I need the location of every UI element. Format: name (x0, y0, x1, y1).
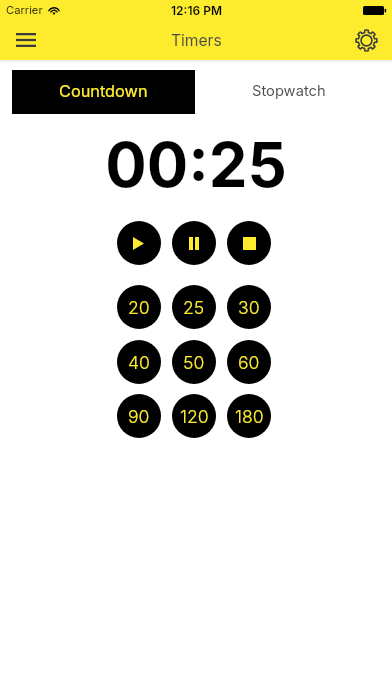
staticText: 30 (238, 297, 260, 318)
button[interactable]: Stopwatch (197, 70, 380, 114)
staticText: Carrier (6, 3, 43, 17)
button[interactable]: Countdown (12, 70, 195, 114)
button[interactable]: Stop (227, 221, 271, 265)
button[interactable]: Pause (172, 221, 216, 265)
button[interactable]: 120 (172, 394, 216, 438)
staticText: 180 (235, 406, 264, 427)
button[interactable]: 40 (117, 340, 161, 384)
staticText: 25 (183, 297, 205, 318)
staticText: 20 (128, 297, 150, 318)
button[interactable]: Play (117, 221, 161, 265)
staticText: 00:25 (0, 127, 392, 201)
button[interactable]: 50 (172, 340, 216, 384)
button[interactable]: 60 (227, 340, 271, 384)
staticText: 12:16 PM (171, 3, 222, 18)
button[interactable]: 25 (172, 285, 216, 329)
button[interactable]: 90 (117, 394, 161, 438)
staticText: 50 (183, 352, 205, 373)
button[interactable]: Menu (4, 20, 48, 60)
button[interactable]: Settings (344, 20, 388, 60)
staticText: Timers (171, 31, 222, 50)
button[interactable]: 180 (227, 394, 271, 438)
button[interactable]: 20 (117, 285, 161, 329)
staticText: 90 (128, 406, 150, 427)
staticText: 60 (238, 352, 260, 373)
staticText: Stopwatch (252, 82, 326, 100)
staticText: 120 (180, 406, 209, 427)
staticText: Countdown (59, 81, 148, 101)
button[interactable]: 30 (227, 285, 271, 329)
staticText: 40 (128, 352, 150, 373)
